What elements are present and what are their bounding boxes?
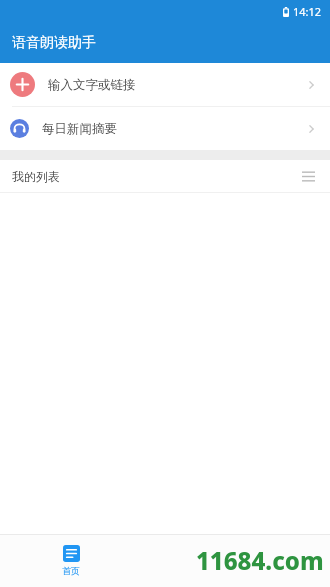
button[interactable]: 我的列表	[0, 160, 330, 192]
button[interactable]: 每日新闻摘要	[0, 107, 330, 150]
staticText: 每日新闻摘要	[42, 121, 117, 137]
staticText: 我的列表	[12, 169, 60, 184]
staticText: 语音朗读助手	[12, 34, 96, 52]
staticText: 输入文字或链接	[48, 77, 136, 93]
button[interactable]: List options	[298, 166, 318, 186]
staticText: 14:12	[293, 4, 322, 19]
button[interactable]: 输入文字或链接	[0, 63, 330, 106]
staticText: 首页	[62, 565, 80, 576]
button[interactable]: 首页	[58, 541, 84, 580]
staticText: 11684.com	[196, 544, 324, 577]
